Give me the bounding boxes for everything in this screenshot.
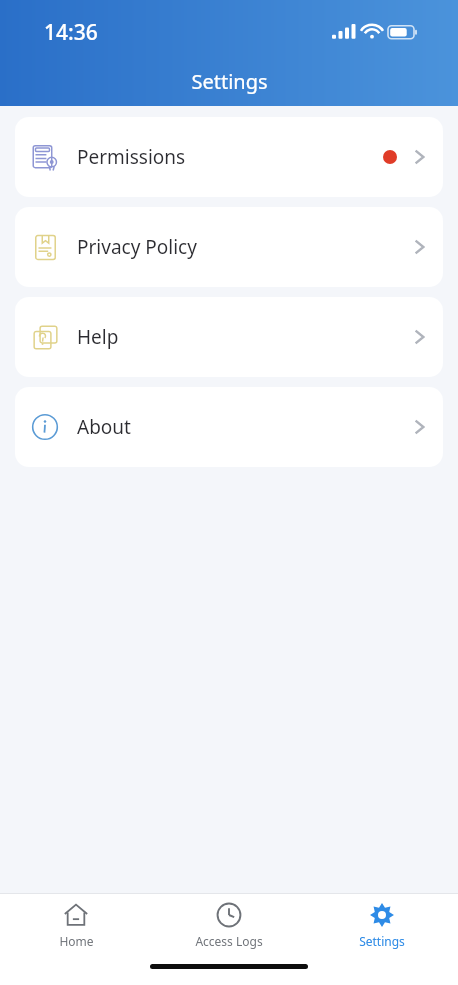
- button[interactable]: Home: [0, 898, 152, 953]
- staticText: 14:36: [44, 18, 98, 47]
- button[interactable]: Access Logs: [152, 898, 305, 953]
- staticText: Permissions: [77, 144, 186, 170]
- other: Settings: [369, 902, 395, 928]
- other: Access Logs: [216, 902, 242, 928]
- staticText: About: [77, 414, 131, 440]
- staticText: Help: [77, 324, 119, 350]
- staticText: Privacy Policy: [77, 234, 197, 260]
- staticText: Settings: [359, 933, 405, 949]
- button[interactable]: About: [15, 387, 443, 467]
- button[interactable]: Help: [15, 297, 443, 377]
- staticText: Access Logs: [195, 933, 263, 949]
- button[interactable]: Settings: [305, 898, 458, 953]
- staticText: Settings: [191, 68, 268, 95]
- other: Home: [63, 902, 89, 928]
- staticText: Home: [59, 933, 94, 949]
- button[interactable]: Privacy Policy: [15, 207, 443, 287]
- button[interactable]: Permissions: [15, 117, 443, 197]
